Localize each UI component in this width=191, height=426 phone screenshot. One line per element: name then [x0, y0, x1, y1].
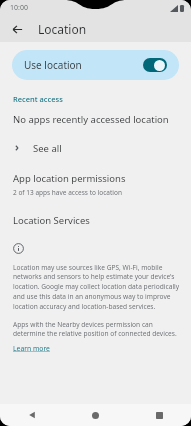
button[interactable]: Location Services: [0, 214, 191, 227]
button[interactable]: Recent apps: [127, 404, 191, 426]
button[interactable]: Use location: [12, 50, 179, 80]
staticText: Location: [38, 21, 87, 37]
staticText: 10:00: [10, 3, 28, 13]
other: Information: [13, 243, 24, 254]
staticText: Use location: [24, 58, 143, 72]
button[interactable]: Back: [6, 18, 28, 40]
button[interactable]: Home: [63, 404, 127, 426]
staticText: See all: [33, 142, 62, 155]
staticText: Apps with the Nearby devices permission …: [13, 320, 181, 338]
staticText: App location permissions: [13, 172, 126, 185]
staticText: Recent access: [13, 94, 63, 104]
staticText: No apps recently accessed location: [13, 113, 169, 126]
button[interactable]: Back: [0, 404, 63, 426]
button[interactable]: Learn more: [13, 344, 50, 353]
button[interactable]: See all: [0, 138, 191, 158]
staticText: 2 of 13 apps have access to location: [13, 188, 122, 197]
button[interactable]: App location permissions: [0, 171, 191, 198]
staticText: Location may use sources like GPS, Wi-Fi…: [13, 263, 181, 311]
